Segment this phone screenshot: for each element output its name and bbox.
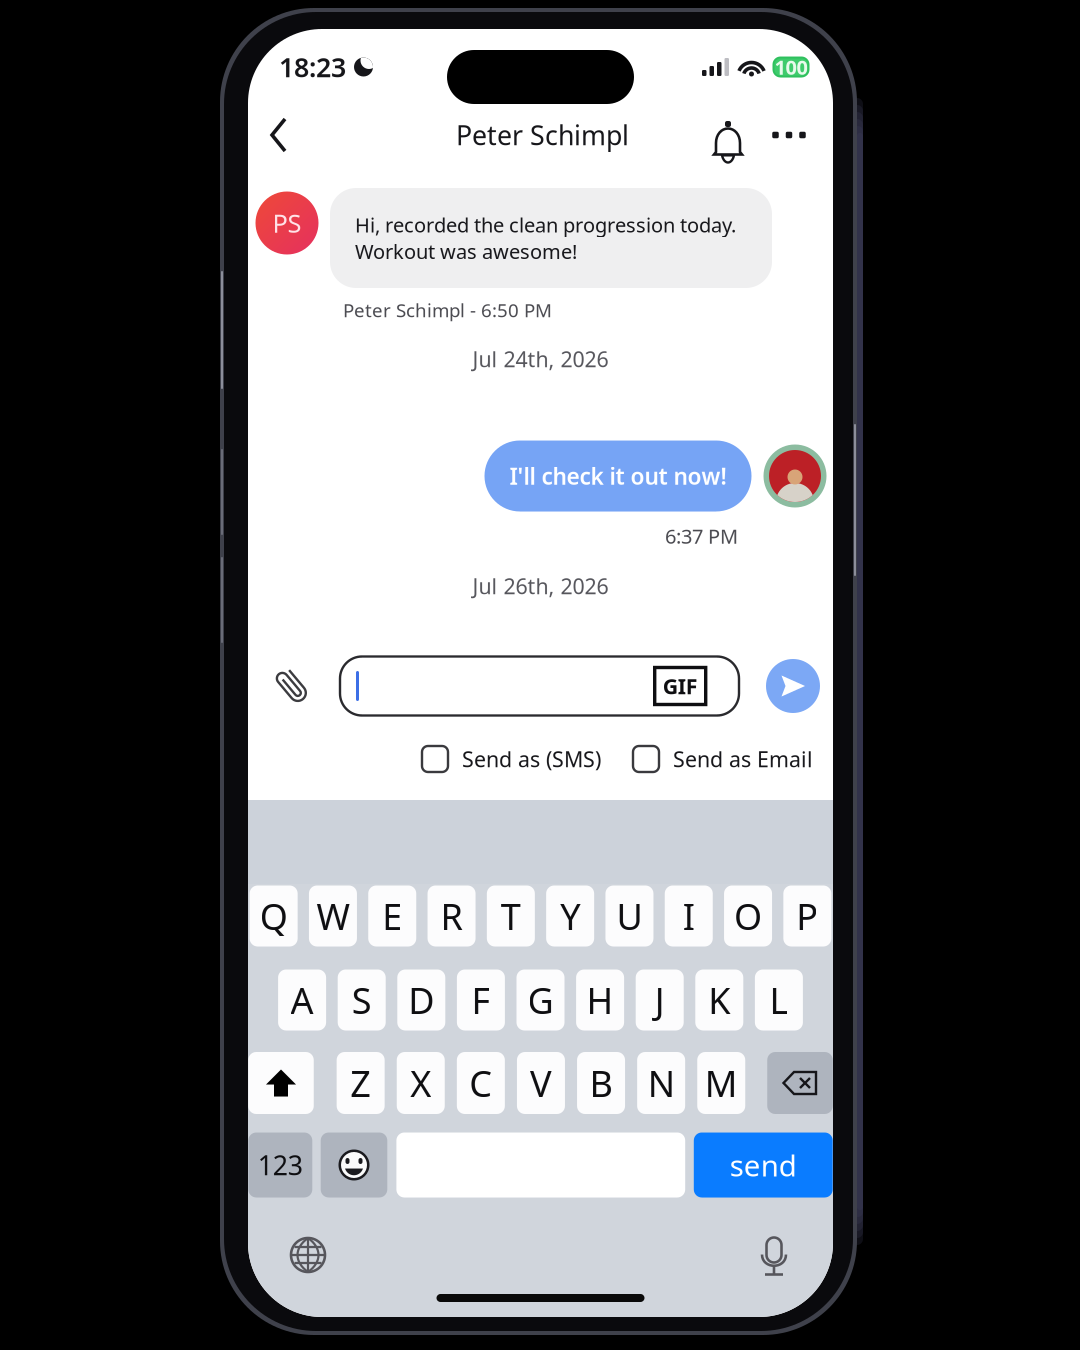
- button[interactable]: E: [368, 885, 416, 946]
- staticText: S: [352, 976, 372, 1024]
- staticText: PS: [272, 206, 301, 240]
- staticText: 100: [774, 54, 807, 80]
- button[interactable]: U: [605, 885, 653, 946]
- button[interactable]: T: [487, 885, 535, 946]
- button[interactable]: Space: [396, 1132, 685, 1197]
- button[interactable]: D: [397, 969, 445, 1030]
- staticText: send: [730, 1145, 797, 1184]
- staticText: G: [527, 976, 553, 1024]
- button[interactable]: G: [516, 969, 564, 1030]
- staticText: L: [769, 976, 788, 1024]
- button[interactable]: Send as Email: [633, 745, 813, 773]
- staticText: F: [471, 976, 490, 1024]
- button[interactable]: R: [427, 885, 475, 946]
- button[interactable]: N: [637, 1052, 685, 1114]
- button[interactable]: Notifications: [705, 113, 751, 161]
- staticText: Z: [350, 1059, 371, 1107]
- button[interactable]: send: [694, 1132, 833, 1197]
- button[interactable]: A: [278, 969, 326, 1030]
- button[interactable]: O: [724, 885, 772, 946]
- staticText: Y: [560, 892, 580, 940]
- button[interactable]: Switch keyboard: [290, 1237, 326, 1273]
- staticText: V: [530, 1059, 552, 1107]
- staticText: 123: [258, 1147, 303, 1183]
- staticText: H: [587, 976, 614, 1024]
- button[interactable]: Q: [250, 885, 298, 946]
- staticText: Jul 26th, 2026: [472, 572, 608, 600]
- button[interactable]: 123: [248, 1132, 312, 1197]
- button[interactable]: Attach file: [270, 661, 314, 711]
- button[interactable]: P: [783, 885, 831, 946]
- button[interactable]: Send as (SMS): [422, 745, 612, 773]
- button[interactable]: J: [636, 969, 684, 1030]
- staticText: R: [440, 892, 462, 940]
- staticText: P: [796, 892, 818, 940]
- staticText: N: [648, 1059, 675, 1107]
- button[interactable]: More options: [766, 112, 812, 158]
- staticText: Jul 24th, 2026: [472, 345, 608, 373]
- staticText: U: [616, 892, 642, 940]
- staticText: GIF: [663, 672, 698, 700]
- button[interactable]: F: [457, 969, 505, 1030]
- staticText: T: [501, 892, 521, 940]
- button[interactable]: X: [397, 1052, 445, 1114]
- button[interactable]: L: [755, 969, 803, 1030]
- staticText: A: [291, 976, 314, 1024]
- staticText: Peter Schimpl - 6:50 PM: [343, 298, 552, 322]
- staticText: E: [382, 892, 402, 940]
- button[interactable]: H: [576, 969, 624, 1030]
- staticText: Peter Schimpl: [456, 117, 629, 153]
- button[interactable]: S: [338, 969, 386, 1030]
- staticText: K: [708, 976, 730, 1024]
- button[interactable]: Dictate: [759, 1235, 789, 1275]
- staticText: Hi, recorded the clean progression today…: [355, 211, 736, 264]
- button[interactable]: I: [665, 885, 713, 946]
- staticText: W: [316, 892, 349, 940]
- button[interactable]: Delete: [767, 1052, 833, 1114]
- button[interactable]: C: [457, 1052, 505, 1114]
- button[interactable]: M: [697, 1052, 745, 1114]
- button[interactable]: Send: [766, 659, 820, 713]
- staticText: C: [469, 1059, 492, 1107]
- staticText: I'll check it out now!: [509, 461, 726, 491]
- staticText: I: [683, 892, 695, 940]
- staticText: Send as (SMS): [462, 745, 601, 773]
- button[interactable]: K: [695, 969, 743, 1030]
- staticText: M: [705, 1059, 738, 1107]
- staticText: O: [734, 892, 762, 940]
- button[interactable]: Emoji: [321, 1132, 387, 1197]
- button[interactable]: B: [577, 1052, 625, 1114]
- staticText: B: [589, 1059, 612, 1107]
- staticText: D: [408, 976, 434, 1024]
- staticText: Send as Email: [673, 745, 813, 773]
- button[interactable]: Shift: [248, 1052, 314, 1114]
- staticText: X: [410, 1059, 431, 1107]
- staticText: 18:23: [279, 49, 346, 85]
- button[interactable]: Back: [255, 111, 303, 159]
- staticText: 6:37 PM: [665, 523, 738, 549]
- staticText: Q: [260, 892, 288, 940]
- staticText: J: [655, 976, 665, 1024]
- button[interactable]: V: [517, 1052, 565, 1114]
- button[interactable]: W: [309, 885, 357, 946]
- button[interactable]: Z: [337, 1052, 385, 1114]
- button[interactable]: Y: [546, 885, 594, 946]
